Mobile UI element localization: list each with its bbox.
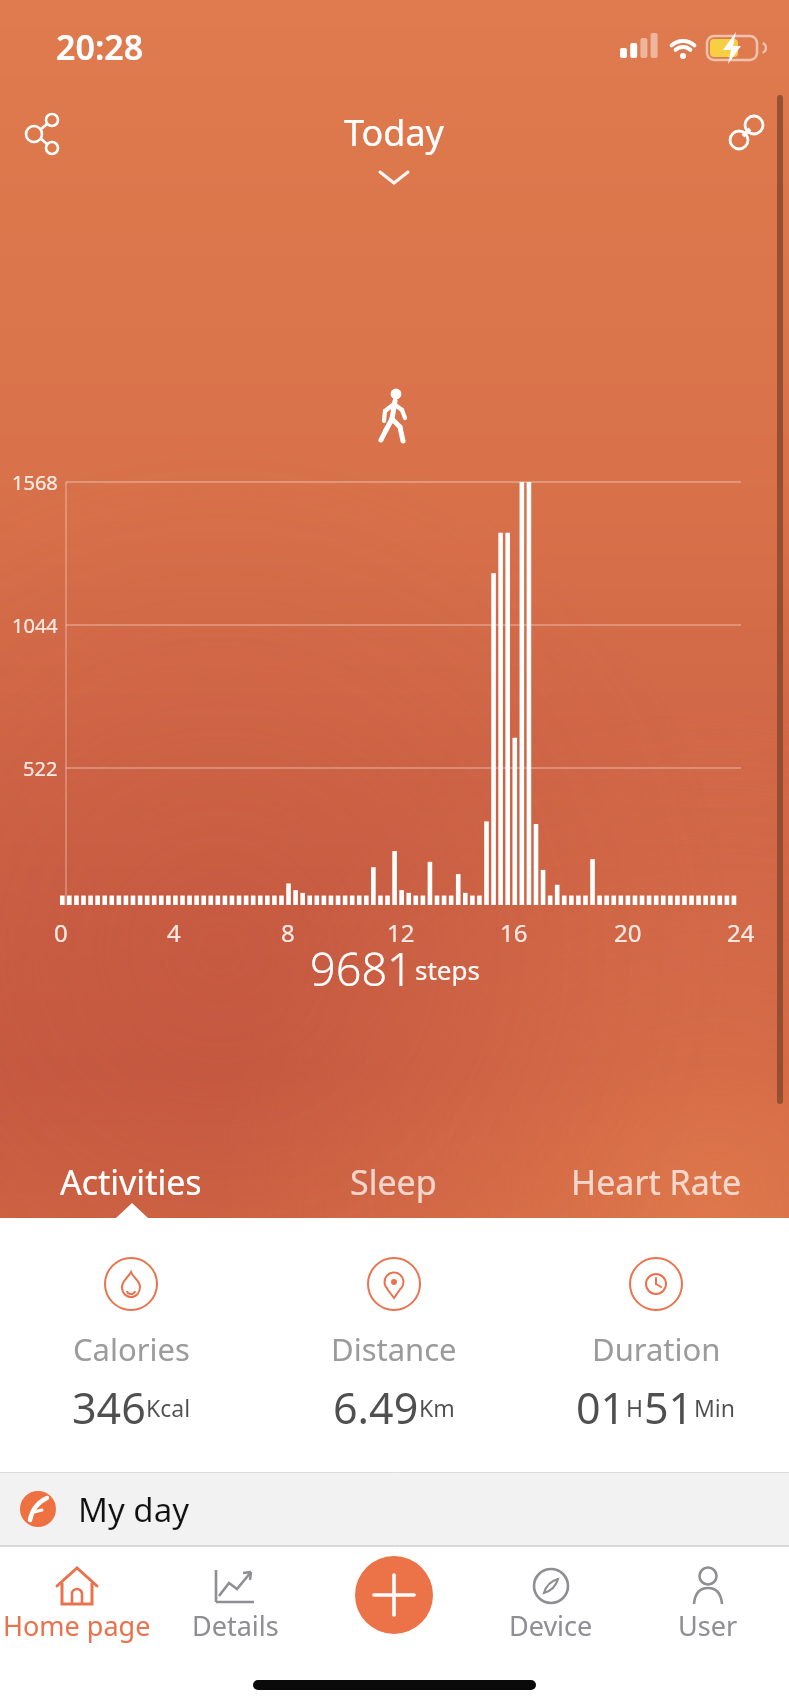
staticText: 20:28 [56, 24, 144, 66]
button[interactable]: Activities [31, 1155, 231, 1209]
staticText: Min [694, 1392, 736, 1423]
staticText: Today [344, 108, 444, 157]
staticText: steps [415, 952, 480, 987]
staticText: Details [192, 1607, 279, 1644]
button[interactable]: Heart Rate [556, 1155, 756, 1209]
staticText: Calories [73, 1328, 190, 1368]
button[interactable]: 20:28 [40, 24, 160, 66]
staticText: 24 [727, 916, 755, 946]
button[interactable]: User [633, 1560, 783, 1660]
staticText: 20 [614, 916, 642, 946]
staticText: 8 [281, 916, 295, 946]
button[interactable]: Home page [2, 1560, 152, 1660]
button[interactable] [14, 105, 70, 161]
staticText: 16 [500, 916, 528, 946]
button[interactable]: Device [476, 1560, 626, 1660]
staticText: 4 [167, 916, 181, 946]
staticText: User [678, 1607, 738, 1644]
staticText: 346 [72, 1378, 146, 1428]
staticText: Duration [592, 1328, 721, 1368]
staticText: Distance [331, 1328, 457, 1368]
button[interactable] [105, 1258, 157, 1310]
staticText: Home page [3, 1607, 151, 1644]
staticText: 0 [54, 916, 68, 946]
staticText: 12 [387, 916, 415, 946]
staticText: Device [509, 1607, 593, 1644]
staticText: My day [78, 1487, 189, 1532]
button[interactable] [355, 1556, 433, 1634]
button[interactable]: My day [0, 1472, 789, 1546]
staticText: 51 [644, 1378, 694, 1428]
staticText: Sleep [350, 1159, 437, 1205]
button[interactable]: Today [294, 108, 494, 188]
staticText: Activities [60, 1159, 202, 1205]
button[interactable]: Sleep [293, 1155, 493, 1209]
button[interactable] [630, 1258, 682, 1310]
staticText: 1044 [12, 612, 58, 639]
staticText: 1568 [12, 469, 58, 496]
staticText: H [626, 1392, 644, 1423]
staticText: 9681 [310, 938, 413, 994]
staticText: Heart Rate [571, 1159, 742, 1205]
button[interactable] [368, 1258, 420, 1310]
staticText: 6.49 [333, 1378, 419, 1428]
staticText: 01 [576, 1378, 626, 1428]
staticText: Kcal [146, 1392, 191, 1423]
staticText: Km [419, 1392, 455, 1423]
button[interactable]: Details [160, 1560, 310, 1660]
button[interactable] [718, 105, 774, 161]
staticText: 522 [23, 755, 58, 782]
